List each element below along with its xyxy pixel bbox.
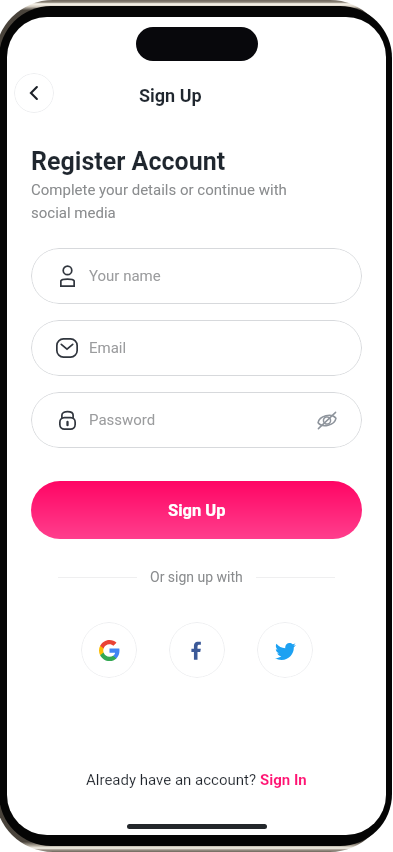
staticText: Or sign up with (150, 569, 243, 585)
button[interactable]: Already have an account? (7, 771, 386, 789)
staticText: Sign Up (139, 85, 202, 106)
other: Show password (317, 412, 337, 429)
staticText: Your name (89, 267, 337, 285)
staticText: Register Account (31, 147, 226, 176)
staticText: Already have an account? (86, 771, 260, 789)
staticText: Sign Up (168, 501, 226, 520)
button[interactable]: Sign up with Facebook (169, 622, 225, 678)
button[interactable]: Sign Up (31, 481, 362, 539)
button[interactable]: Password (31, 392, 362, 448)
button[interactable]: Email (31, 320, 362, 376)
button[interactable]: Back (14, 73, 54, 113)
button[interactable]: Your name (31, 248, 362, 304)
staticText: Password (89, 411, 317, 429)
button[interactable]: Sign up with Twitter (257, 622, 313, 678)
staticText: Complete your details or continue with s… (31, 181, 287, 222)
staticText: Sign In (260, 771, 307, 789)
button[interactable]: Sign up with Google (81, 622, 137, 678)
staticText: Email (89, 339, 337, 357)
